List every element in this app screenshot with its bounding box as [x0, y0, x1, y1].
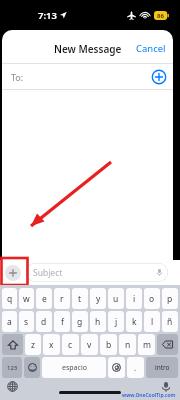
staticText: ñ	[167, 316, 173, 328]
staticText: b	[106, 339, 112, 351]
button[interactable]: Add contact	[151, 69, 167, 85]
staticText: p	[167, 293, 173, 305]
staticText: m	[143, 339, 151, 351]
staticText: Subject	[33, 267, 63, 279]
button[interactable]: h	[90, 311, 106, 332]
staticText: q	[7, 293, 13, 305]
staticText: New Message	[54, 42, 122, 56]
button[interactable]: u	[108, 288, 124, 309]
staticText: e	[42, 293, 47, 305]
button[interactable]: y	[90, 288, 106, 309]
button[interactable]: z	[25, 334, 41, 355]
staticText: intro	[155, 363, 170, 372]
button[interactable]: k	[126, 311, 142, 332]
button[interactable]: x	[43, 334, 60, 355]
staticText: 123	[7, 364, 18, 372]
button[interactable]: m	[138, 334, 155, 355]
staticText: www.OneCoolTip.com	[122, 392, 176, 399]
staticText: h	[95, 316, 101, 328]
staticText: v	[87, 339, 92, 351]
staticText: z	[31, 339, 35, 351]
button[interactable]: espacio	[42, 357, 106, 378]
button[interactable]: b	[100, 334, 117, 355]
button[interactable]: q	[2, 288, 17, 309]
staticText: 86	[157, 12, 164, 20]
staticText: espacio	[62, 363, 87, 373]
staticText: l	[151, 316, 154, 328]
button[interactable]: f	[54, 311, 70, 332]
staticText: .	[134, 362, 137, 373]
button[interactable]: d	[36, 311, 52, 332]
staticText: Cancel	[136, 42, 166, 55]
button[interactable]: w	[19, 288, 34, 309]
button[interactable]: ñ	[162, 311, 178, 332]
button[interactable]: t	[72, 288, 88, 309]
button[interactable]: r	[54, 288, 70, 309]
staticText: a	[7, 316, 12, 328]
button[interactable]: s	[19, 311, 34, 332]
button[interactable]: 123	[2, 357, 22, 378]
button[interactable]: c	[62, 334, 79, 355]
button[interactable]: Emoji	[24, 357, 40, 378]
staticText: u	[113, 293, 119, 305]
button[interactable]: Shift	[2, 334, 23, 355]
button[interactable]: g	[72, 311, 88, 332]
button[interactable]: Subject	[26, 263, 168, 282]
staticText: s	[24, 316, 29, 328]
staticText: t	[78, 293, 82, 305]
button[interactable]: e	[36, 288, 52, 309]
staticText: n	[125, 339, 131, 351]
staticText: x	[49, 339, 54, 351]
button[interactable]: n	[119, 334, 136, 355]
button[interactable]: At sign	[108, 357, 125, 378]
button[interactable]: v	[81, 334, 98, 355]
staticText: c	[68, 339, 73, 351]
staticText: g	[77, 316, 83, 328]
button[interactable]: .	[127, 357, 144, 378]
staticText: k	[132, 316, 137, 328]
button[interactable]: j	[108, 311, 124, 332]
button[interactable]: i	[126, 288, 142, 309]
staticText: j	[115, 316, 118, 328]
button[interactable]: Backspace	[157, 334, 178, 355]
staticText: w	[23, 293, 30, 305]
button[interactable]: o	[144, 288, 160, 309]
button[interactable]: Dictate	[161, 382, 171, 392]
staticText: f	[61, 316, 64, 328]
staticText: o	[149, 293, 155, 305]
staticText: y	[96, 293, 101, 305]
button[interactable]: Change keyboard	[7, 381, 18, 392]
staticText: To:	[11, 71, 24, 83]
button[interactable]: Cancel	[129, 38, 173, 59]
button[interactable]: l	[144, 311, 160, 332]
button[interactable]: intro	[146, 357, 178, 378]
staticText: i	[133, 293, 136, 305]
staticText: d	[41, 316, 47, 328]
button[interactable]: a	[2, 311, 17, 332]
button[interactable]: Add attachment	[5, 265, 21, 281]
staticText: r	[60, 293, 64, 305]
button[interactable]: p	[162, 288, 178, 309]
staticText: 7:13	[38, 9, 57, 22]
